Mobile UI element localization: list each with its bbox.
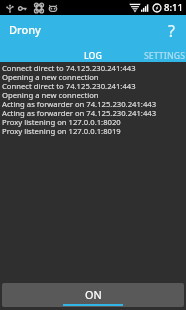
button[interactable]: LOG: [65, 44, 121, 62]
staticText: Connect direct to 74.125.230.241:443 Ope…: [2, 63, 157, 137]
button[interactable]: ON: [2, 283, 184, 307]
staticText: 8:11: [164, 1, 183, 14]
button[interactable]: SETTINGS: [144, 44, 185, 62]
staticText: SETTINGS: [144, 50, 185, 62]
staticText: ?: [168, 20, 175, 42]
staticText: LOG: [84, 50, 102, 62]
staticText: ON: [85, 287, 102, 302]
button[interactable]: Help: [157, 15, 186, 44]
staticText: Drony: [9, 22, 41, 37]
